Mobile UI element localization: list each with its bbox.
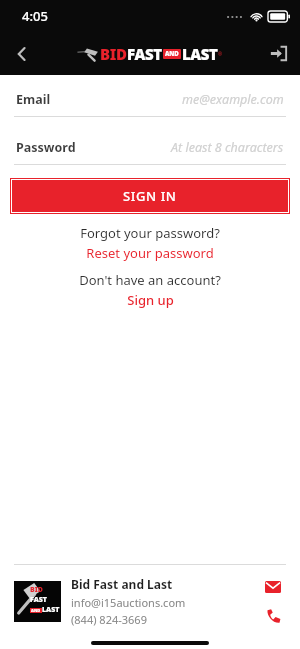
staticText: (844) 824-3669 — [71, 612, 147, 627]
button[interactable]: Password — [0, 137, 300, 165]
staticText: FAST — [30, 595, 47, 605]
staticText: Forgot your password? — [80, 224, 220, 242]
button[interactable]: Email us — [260, 574, 286, 600]
staticText: Sign up — [127, 291, 174, 309]
staticText: Bid Fast and Last — [71, 576, 173, 592]
staticText: me@example.com — [182, 91, 284, 108]
button[interactable]: SIGN IN — [12, 180, 288, 212]
button[interactable]: Sign up — [127, 291, 174, 309]
button[interactable]: Email — [0, 89, 300, 117]
staticText: ® — [218, 51, 223, 58]
staticText: 4:05 — [22, 7, 48, 25]
staticText: info@i15auctions.com — [71, 595, 186, 610]
staticText: LAST — [182, 44, 218, 64]
staticText: Email — [16, 91, 51, 108]
staticText: Reset your password — [86, 244, 214, 262]
button[interactable]: Sign in — [256, 32, 300, 75]
staticText: At least 8 characters — [171, 139, 284, 156]
staticText: AND — [31, 608, 41, 613]
staticText: Password — [16, 139, 76, 156]
button[interactable]: Reset your password — [86, 244, 214, 262]
staticText: AND — [165, 50, 179, 58]
button[interactable]: Call us — [260, 603, 286, 629]
staticText: BID — [100, 44, 127, 64]
staticText: SIGN IN — [123, 187, 177, 205]
staticText: LAST — [42, 605, 60, 615]
staticText: BID — [30, 585, 43, 595]
button[interactable]: Back — [0, 32, 44, 75]
staticText: FAST — [127, 44, 162, 64]
staticText: Don't have an account? — [79, 271, 221, 289]
